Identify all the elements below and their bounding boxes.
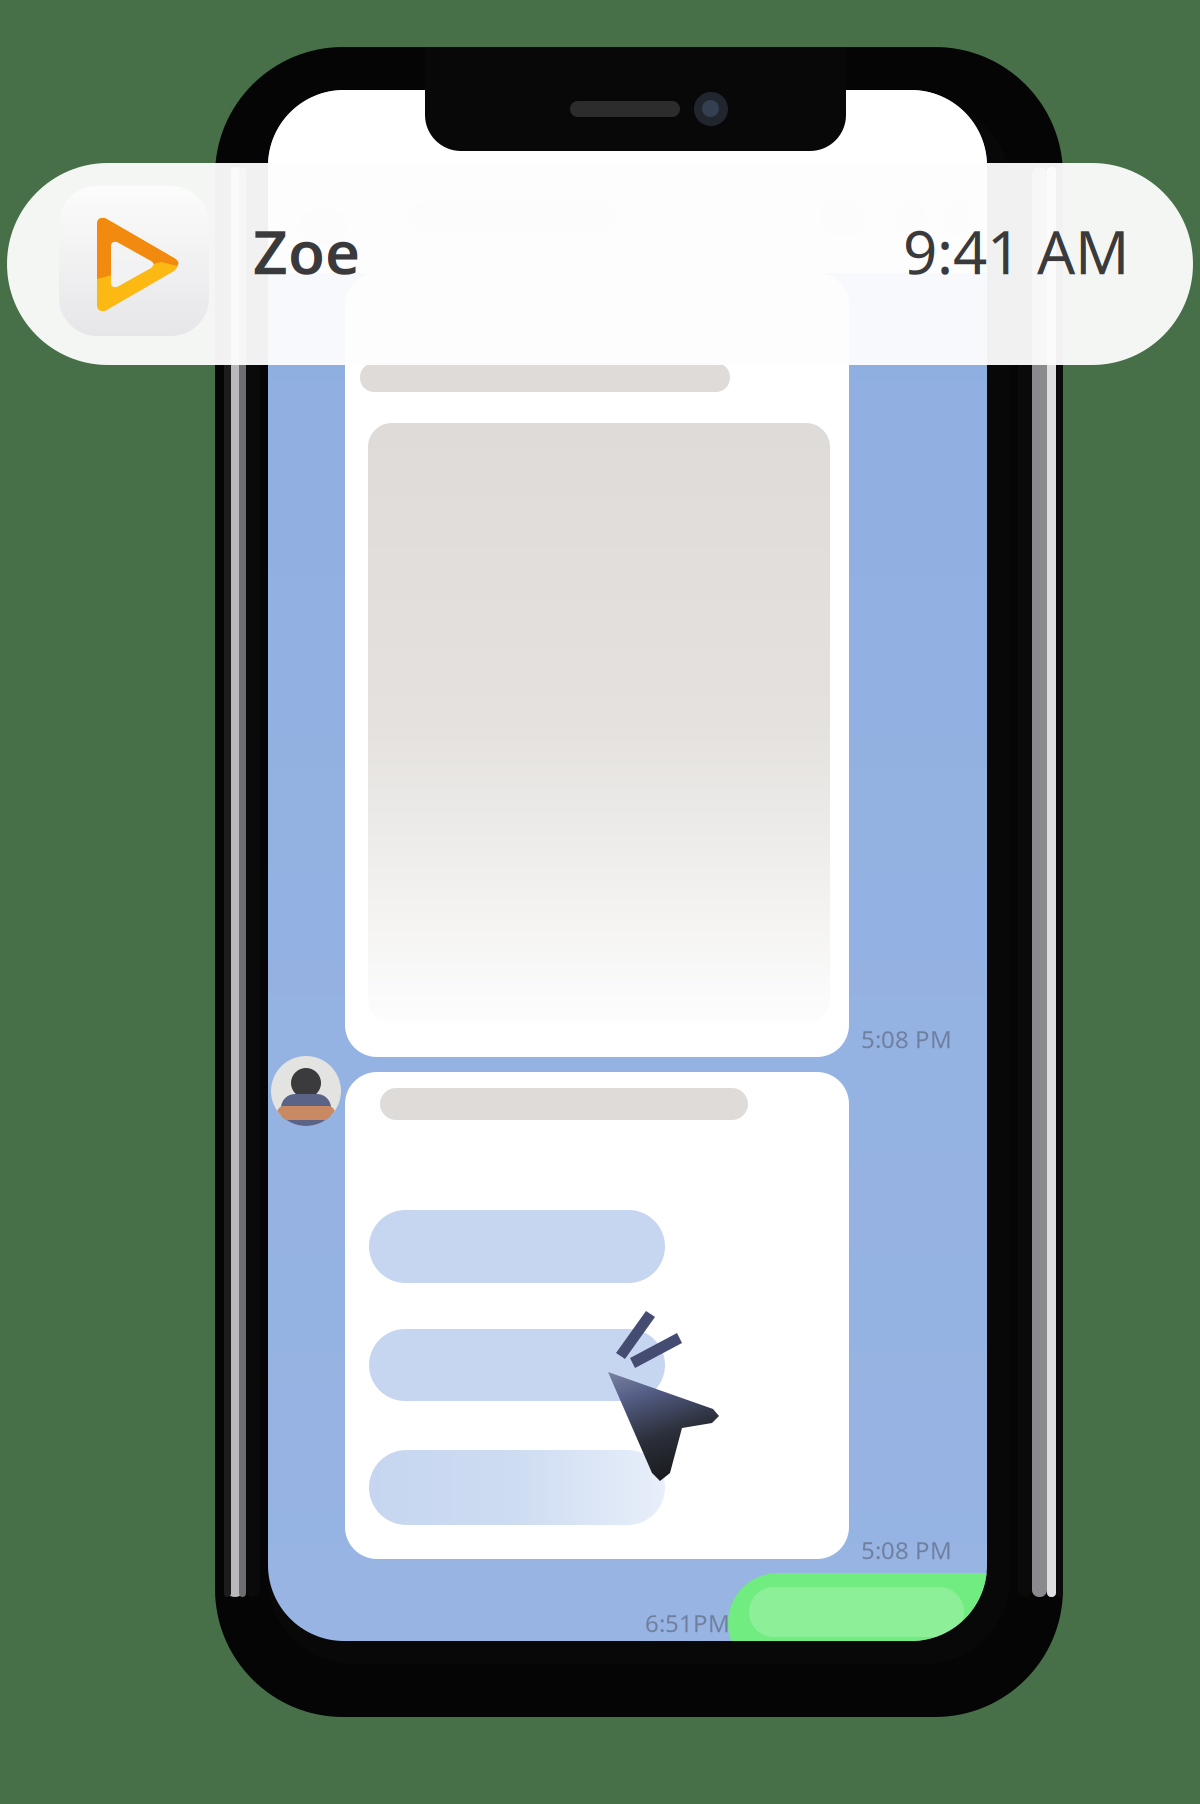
staticText: 9:41 AM [903,211,1129,291]
button[interactable]: Zoe [0,0,1200,1804]
staticText: Zoe [253,211,360,291]
staticText: 5:08 PM [861,1534,952,1566]
staticText: 6:51PM [645,1607,730,1639]
staticText: 5:08 PM [861,1023,952,1055]
